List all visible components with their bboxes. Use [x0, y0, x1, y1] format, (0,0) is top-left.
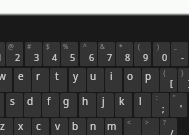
staticText: e [18, 69, 24, 83]
button[interactable]: k [115, 93, 132, 117]
staticText: 4 [52, 51, 58, 63]
button[interactable]: m [105, 118, 122, 135]
button[interactable]: i [105, 68, 122, 92]
button[interactable]: v [51, 118, 68, 135]
button[interactable]: $ [43, 42, 60, 66]
staticText: l [139, 94, 142, 108]
staticText: v [55, 119, 61, 133]
button[interactable]: z [0, 118, 13, 135]
button[interactable]: c [32, 118, 49, 135]
button[interactable]: o [124, 68, 141, 92]
staticText: j [102, 94, 105, 108]
staticText: 2 [15, 51, 21, 63]
staticText: d [27, 94, 34, 108]
button[interactable]: x [14, 118, 31, 135]
staticText: o [127, 69, 134, 83]
staticText: t [55, 69, 59, 83]
staticText: r [36, 69, 41, 83]
staticText: # [27, 42, 32, 51]
button[interactable]: # [25, 42, 42, 66]
staticText: ] [188, 77, 189, 89]
staticText: x [18, 119, 24, 133]
button[interactable]: < [124, 118, 141, 135]
button[interactable]: u [87, 68, 104, 92]
button[interactable]: _ [171, 42, 188, 66]
button[interactable]: ? [160, 118, 177, 135]
button[interactable]: j [97, 93, 114, 117]
staticText: 7 [107, 51, 113, 63]
staticText: s [10, 94, 15, 108]
staticText: / [170, 127, 174, 135]
staticText: @ [8, 42, 14, 51]
staticText: 5 [70, 51, 76, 63]
staticText: h [82, 94, 89, 108]
button[interactable]: & [98, 42, 115, 66]
staticText: ' [180, 102, 183, 114]
button[interactable]: b [69, 118, 86, 135]
staticText: 9 [143, 51, 149, 63]
staticText: f [47, 94, 51, 108]
staticText: k [119, 94, 125, 108]
staticText: 8 [125, 51, 131, 63]
staticText: n [90, 119, 97, 133]
button[interactable]: ^ [80, 42, 97, 66]
staticText: 3 [34, 51, 40, 63]
staticText: ? [163, 118, 166, 127]
staticText: [ [170, 77, 173, 89]
button[interactable]: n [87, 118, 104, 135]
staticText: - [181, 51, 184, 63]
staticText: } [181, 68, 184, 77]
button[interactable]: > [142, 118, 159, 135]
staticText: ( [138, 42, 140, 51]
staticText: ) [157, 42, 159, 51]
button[interactable]: ( [134, 42, 151, 66]
staticText: 1 [0, 51, 3, 63]
staticText: { [163, 68, 166, 77]
staticText: ; [162, 102, 165, 114]
staticText: $ [46, 42, 50, 51]
button[interactable]: } [178, 68, 189, 92]
staticText: z [0, 119, 5, 133]
button[interactable]: : [152, 93, 169, 117]
staticText: : [156, 93, 158, 102]
staticText: ^ [83, 42, 87, 51]
staticText: 6 [89, 51, 95, 63]
button[interactable]: y [69, 68, 86, 92]
button[interactable]: * [116, 42, 133, 66]
staticText: < [127, 118, 131, 127]
button[interactable]: { [160, 68, 177, 92]
staticText: % [63, 42, 69, 51]
staticText: p [145, 69, 152, 83]
button[interactable]: % [61, 42, 78, 66]
button[interactable]: " [170, 93, 187, 117]
staticText: 0 [162, 51, 168, 63]
button[interactable]: @ [6, 42, 23, 66]
button[interactable]: w [0, 68, 12, 92]
button[interactable]: t [50, 68, 67, 92]
button[interactable]: r [32, 68, 49, 92]
staticText: b [72, 119, 79, 133]
staticText: " [173, 93, 176, 102]
staticText: w [0, 69, 6, 83]
button[interactable]: l [134, 93, 151, 117]
button[interactable]: d [24, 93, 41, 117]
button[interactable]: g [60, 93, 77, 117]
button[interactable]: ~ [0, 42, 5, 66]
staticText: u [90, 69, 97, 83]
button[interactable]: s [6, 93, 23, 117]
staticText: c [36, 119, 41, 133]
staticText: & [100, 42, 105, 51]
staticText: _ [174, 42, 177, 51]
button[interactable]: ) [153, 42, 170, 66]
staticText: m [107, 119, 117, 133]
button[interactable]: f [42, 93, 59, 117]
staticText: > [145, 118, 149, 127]
staticText: * [119, 42, 123, 51]
button[interactable]: e [14, 68, 31, 92]
button[interactable]: h [79, 93, 96, 117]
button[interactable]: p [142, 68, 159, 92]
staticText: i [110, 69, 113, 83]
